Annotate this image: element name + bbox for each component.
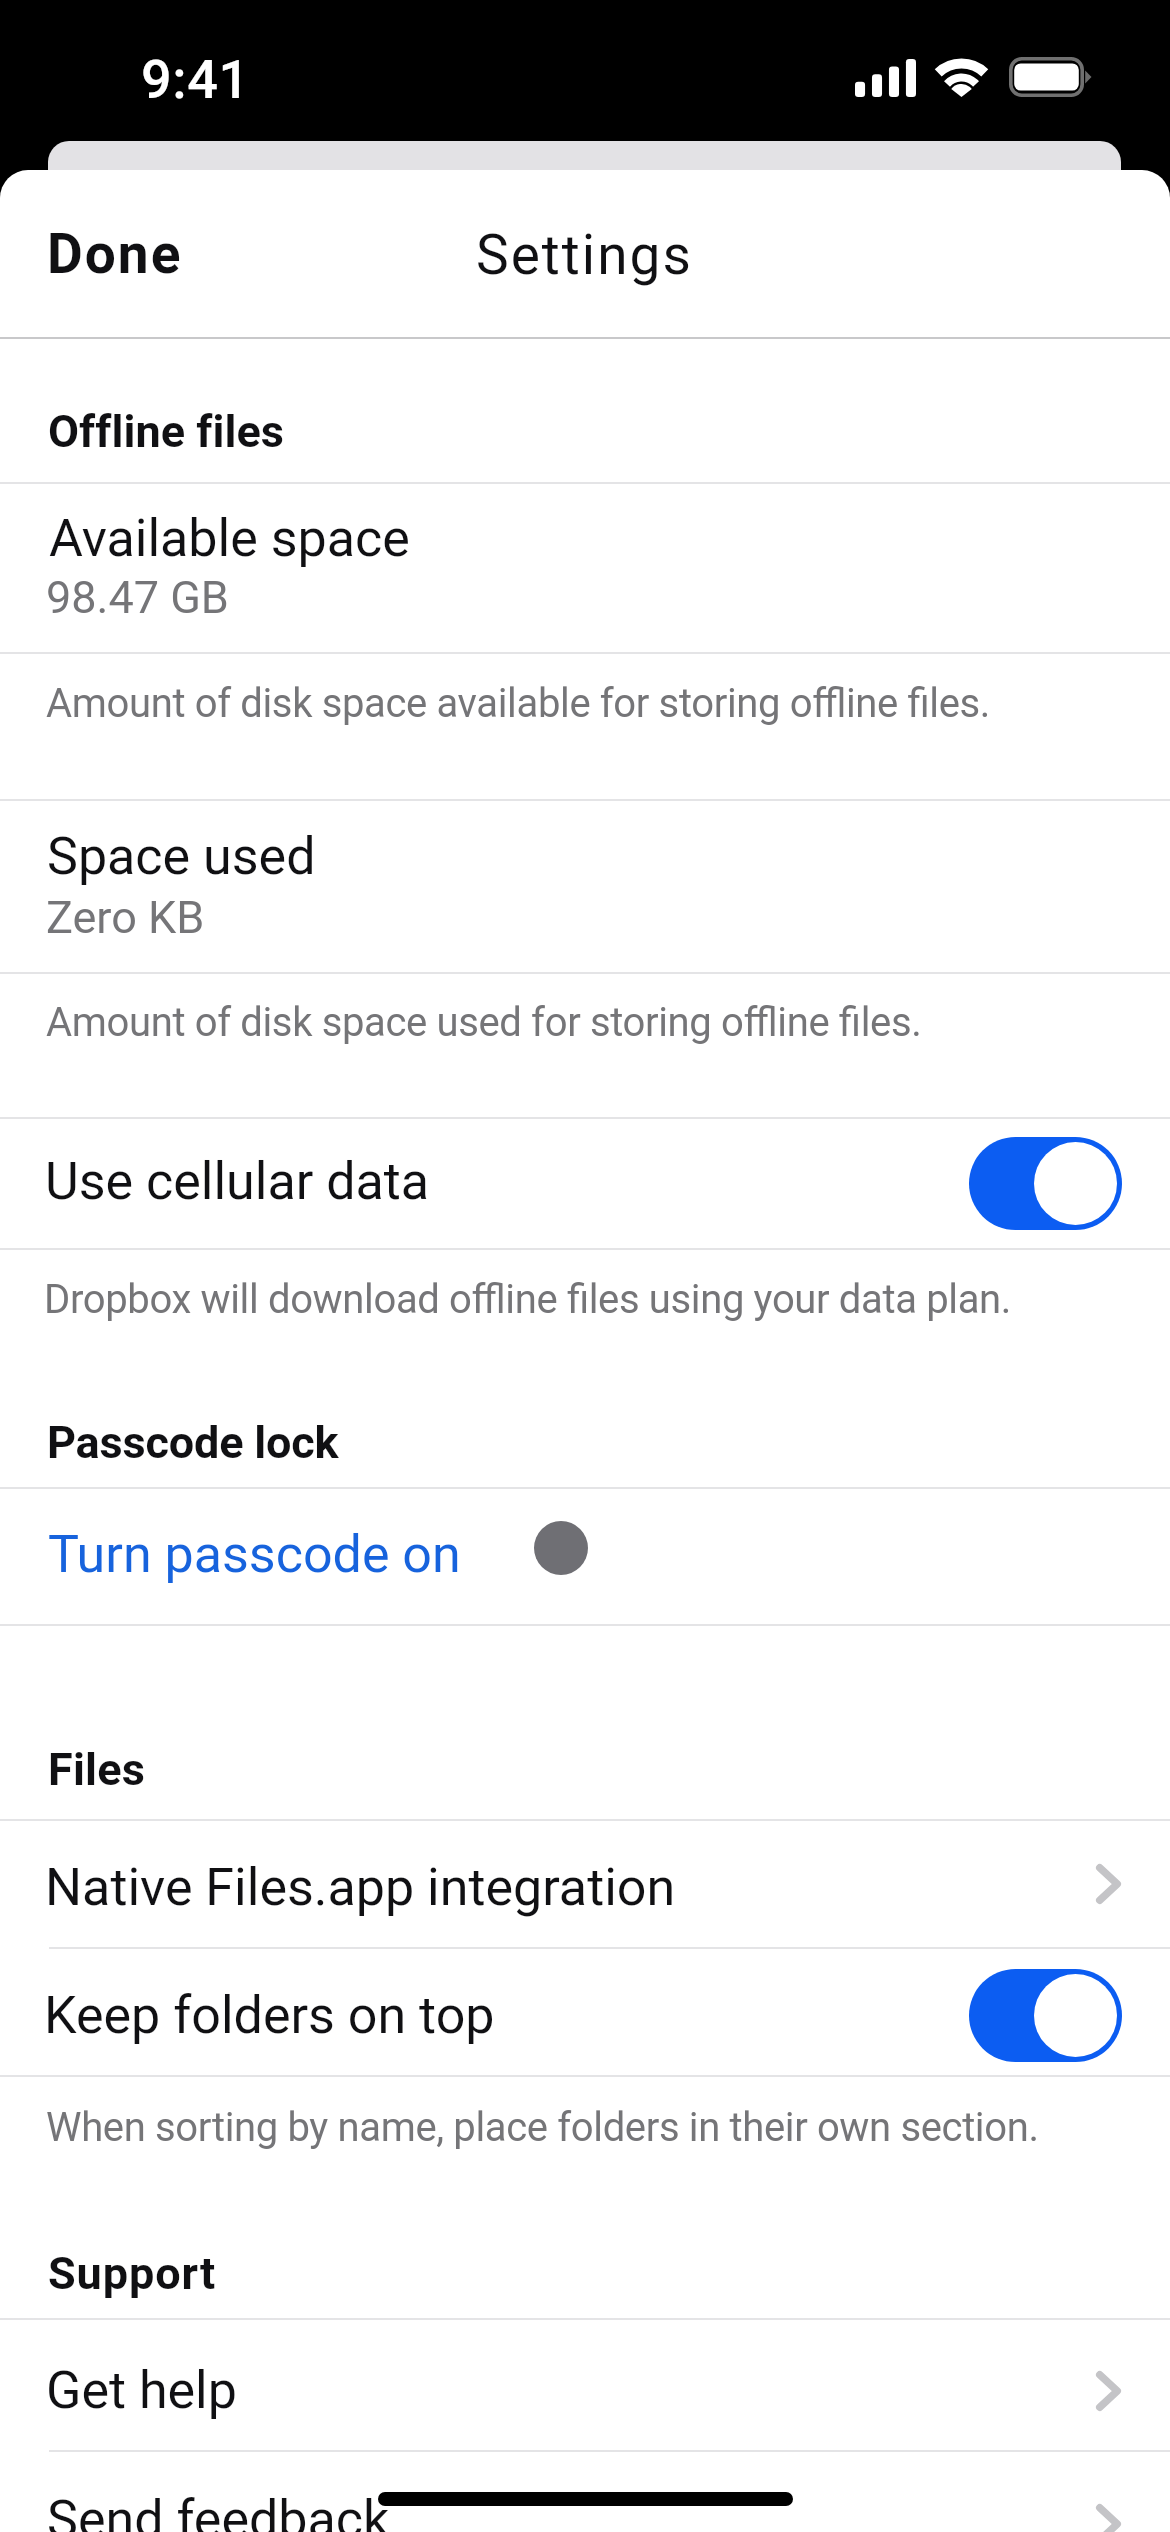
- staticText: Zero KB: [46, 891, 205, 944]
- staticText: 9:41: [141, 48, 250, 111]
- staticText: Files: [48, 1743, 146, 1796]
- staticText: Amount of disk space available for stori…: [46, 680, 991, 727]
- staticText: Offline files: [48, 405, 285, 458]
- button[interactable]: Native Files.app integration: [0, 1819, 1170, 1947]
- button[interactable]: Get help: [0, 2318, 1170, 2450]
- button[interactable]: Turn passcode on: [0, 1487, 1170, 1624]
- staticText: Get help: [46, 2360, 237, 2421]
- staticText: Space used: [47, 826, 316, 887]
- staticText: Support: [48, 2247, 217, 2300]
- button[interactable]: Switch on: [969, 1137, 1122, 1230]
- staticText: Send feedback: [47, 2489, 390, 2532]
- button[interactable]: Keep folders on top: [0, 1947, 1170, 2075]
- staticText: Settings: [476, 223, 693, 287]
- staticText: Passcode lock: [47, 1416, 339, 1469]
- button[interactable]: Send feedback: [0, 2450, 1170, 2532]
- button[interactable]: Switch on: [969, 1969, 1122, 2062]
- staticText: Done: [47, 222, 183, 286]
- button[interactable]: Available space: [0, 482, 1170, 652]
- staticText: 98.47 GB: [46, 571, 229, 624]
- button[interactable]: Use cellular data: [0, 1117, 1170, 1248]
- staticText: Amount of disk space used for storing of…: [46, 999, 922, 1046]
- staticText: Dropbox will download offline files usin…: [44, 1276, 1011, 1323]
- staticText: When sorting by name, place folders in t…: [46, 2104, 1039, 2151]
- staticText: Use cellular data: [45, 1151, 430, 1212]
- staticText: Turn passcode on: [48, 1524, 461, 1585]
- button[interactable]: Done: [30, 190, 200, 300]
- staticText: Keep folders on top: [44, 1985, 495, 2046]
- staticText: Native Files.app integration: [45, 1857, 676, 1918]
- staticText: Available space: [49, 508, 410, 569]
- button[interactable]: Space used: [0, 799, 1170, 972]
